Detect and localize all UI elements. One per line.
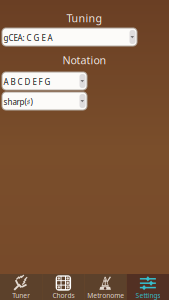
button[interactable]: sharp(♯) [2, 92, 87, 110]
button[interactable]: Metronome [84, 274, 127, 300]
button[interactable]: Tuner [0, 274, 42, 300]
staticText: gCEA: C G E A [3, 32, 52, 43]
staticText: Settings [135, 291, 160, 300]
staticText: Metronome [87, 291, 124, 300]
staticText: Tuner [12, 291, 30, 300]
staticText: sharp(♯) [3, 96, 32, 107]
staticText: Tuning [66, 11, 102, 25]
staticText: Chords [52, 291, 74, 300]
staticText: A B C D E F G [3, 76, 50, 87]
button[interactable]: A B C D E F G [2, 72, 87, 90]
button[interactable]: Chords [42, 274, 84, 300]
staticText: Notation [62, 53, 106, 67]
button[interactable]: Settings [127, 274, 169, 300]
button[interactable]: gCEA: C G E A [2, 28, 137, 46]
